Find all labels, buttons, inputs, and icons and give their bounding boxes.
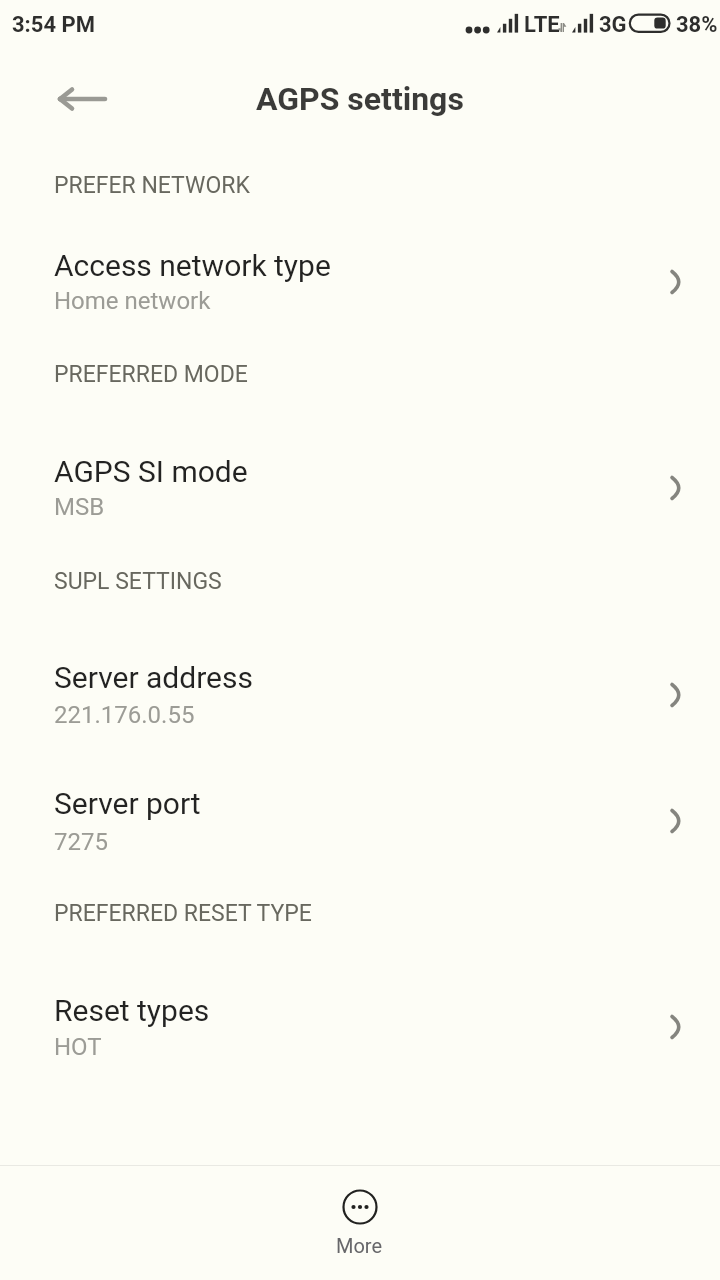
staticText: Reset types (54, 993, 210, 1028)
button[interactable]: Open (648, 460, 704, 516)
button[interactable] (0, 433, 720, 535)
staticText: AGPS settings (256, 80, 464, 118)
button[interactable]: More (280, 1180, 440, 1272)
staticText: 221.176.0.55 (54, 701, 195, 729)
button[interactable] (0, 227, 720, 329)
staticText: PREFERRED RESET TYPE (54, 900, 312, 927)
button[interactable]: Open (648, 667, 704, 723)
button[interactable] (0, 639, 720, 741)
staticText: 3:54 PM (12, 12, 96, 38)
button[interactable] (0, 972, 720, 1074)
staticText: 38% (676, 12, 718, 38)
button[interactable]: Back (37, 66, 103, 132)
staticText: More (336, 1234, 383, 1257)
button[interactable] (0, 765, 720, 867)
staticText: PREFERRED MODE (54, 361, 248, 388)
staticText: Home network (54, 287, 211, 315)
staticText: LTE (524, 12, 560, 38)
staticText: MSB (54, 493, 105, 521)
staticText: PREFER NETWORK (54, 172, 250, 199)
staticText: 3G (599, 12, 627, 38)
staticText: Server address (54, 660, 253, 695)
staticText: 7275 (54, 828, 108, 856)
button[interactable]: Open (648, 999, 704, 1055)
staticText: HOT (54, 1033, 102, 1061)
staticText: SUPL SETTINGS (54, 568, 222, 595)
staticText: Access network type (54, 248, 331, 283)
button[interactable]: Open (648, 254, 704, 310)
button[interactable]: Open (648, 793, 704, 849)
staticText: AGPS SI mode (54, 454, 248, 489)
staticText: Server port (54, 786, 201, 821)
